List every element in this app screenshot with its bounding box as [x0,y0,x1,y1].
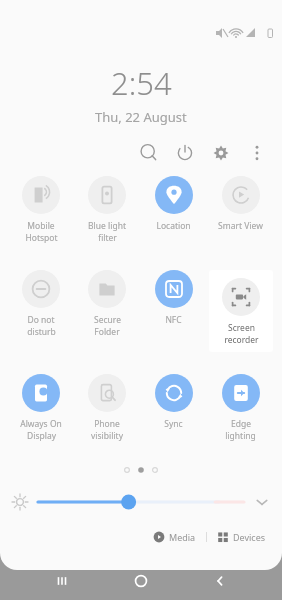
staticText: Hotspot [25,232,58,244]
staticText: Edge [231,418,251,430]
staticText: Media [169,531,196,543]
button[interactable] [38,490,244,514]
button[interactable]: Always On [8,374,74,442]
button[interactable]: Do not [8,270,74,338]
button[interactable]: Mobile [8,176,74,244]
staticText: lighting [225,430,256,442]
button[interactable]: Phone [74,374,140,442]
staticText: Secure [94,314,121,326]
button[interactable]: Secure [74,270,140,338]
button[interactable]: Screen [209,270,273,352]
staticText: Devices [233,531,266,543]
button[interactable]: Expand brightness [252,492,272,512]
button[interactable]: Power [174,142,196,164]
staticText: NFC [165,314,182,326]
staticText: filter [98,232,117,244]
button[interactable]: Media [149,531,200,543]
staticText: visibility [91,430,123,442]
button[interactable]: Back [203,564,237,598]
button[interactable]: Location [140,176,207,232]
button[interactable]: Brightness [10,492,30,512]
staticText: 2:54 [111,62,172,104]
staticText: Display [27,430,56,442]
staticText: Always On [20,418,62,430]
staticText: Phone [94,418,120,430]
staticText: Location [156,220,191,232]
button[interactable]: Edge [207,374,274,442]
button[interactable]: Blue light [74,176,140,244]
button[interactable]: Smart View [207,176,274,232]
staticText: Smart View [218,220,263,232]
staticText: recorder [224,334,259,346]
staticText: disturb [27,326,56,338]
staticText: Screen [228,322,255,334]
button[interactable]: Settings [210,142,232,164]
button[interactable]: Sync [140,374,207,430]
staticText: Folder [94,326,120,338]
button[interactable]: Home [124,564,158,598]
button[interactable]: NFC [140,270,207,326]
button[interactable]: Devices [213,531,270,543]
button[interactable]: Recents [45,564,79,598]
staticText: Thu, 22 August [95,108,187,126]
button[interactable]: Search [138,142,160,164]
staticText: Blue light [88,220,126,232]
staticText: Sync [164,418,183,430]
button[interactable]: More options [246,142,268,164]
staticText: Do not [27,314,55,326]
staticText: Mobile [27,220,55,232]
